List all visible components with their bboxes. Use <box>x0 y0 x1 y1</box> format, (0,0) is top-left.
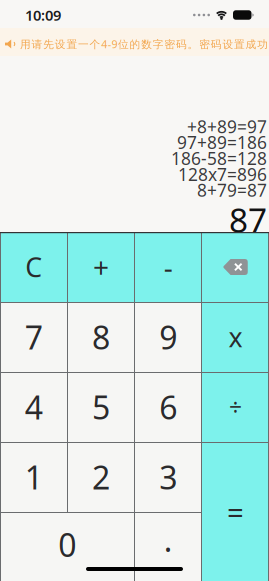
staticText: 4 <box>25 386 43 428</box>
button[interactable]: 6 <box>134 372 202 442</box>
staticText: 9 <box>159 316 177 358</box>
staticText: 87 <box>229 197 267 242</box>
button[interactable]: ÷ <box>202 372 269 442</box>
button[interactable]: . <box>134 512 202 581</box>
staticText: 5 <box>92 386 110 428</box>
staticText: . <box>164 518 173 561</box>
staticText: C <box>25 249 42 285</box>
button[interactable]: 4 <box>0 372 67 442</box>
staticText: 8 <box>92 316 110 358</box>
button[interactable]: 9 <box>134 302 202 372</box>
staticText: 2 <box>92 456 110 498</box>
staticText: ÷ <box>229 392 242 422</box>
staticText: 0 <box>58 523 76 566</box>
staticText: 用请先设置一个4-9位的数字密码。密码设置成功 <box>20 37 268 51</box>
button[interactable]: 0 <box>0 512 134 581</box>
staticText: 6 <box>159 386 177 428</box>
button[interactable]: 2 <box>67 442 134 512</box>
button[interactable]: + <box>67 232 134 302</box>
staticText: 10:09 <box>25 5 61 25</box>
button[interactable]: 3 <box>134 442 202 512</box>
button[interactable]: Delete <box>202 232 269 302</box>
staticText: +8+89=97 <box>187 115 267 138</box>
button[interactable]: = <box>202 442 269 581</box>
staticText: + <box>93 248 109 286</box>
staticText: 97+89=186 <box>177 131 267 154</box>
staticText: = <box>227 492 244 531</box>
button[interactable]: - <box>134 232 202 302</box>
button[interactable]: C <box>0 232 67 302</box>
staticText: x <box>228 319 242 355</box>
button[interactable]: 8 <box>67 302 134 372</box>
staticText: 186-58=128 <box>171 147 267 170</box>
staticText: 1 <box>25 456 43 498</box>
staticText: 128x7=896 <box>178 163 267 186</box>
button[interactable]: x <box>202 302 269 372</box>
staticText: 7 <box>25 316 43 358</box>
staticText: 8+79=87 <box>197 178 267 201</box>
button[interactable]: 1 <box>0 442 67 512</box>
staticText: - <box>164 248 173 286</box>
button[interactable]: 7 <box>0 302 67 372</box>
staticText: 3 <box>159 456 177 498</box>
button[interactable]: 5 <box>67 372 134 442</box>
